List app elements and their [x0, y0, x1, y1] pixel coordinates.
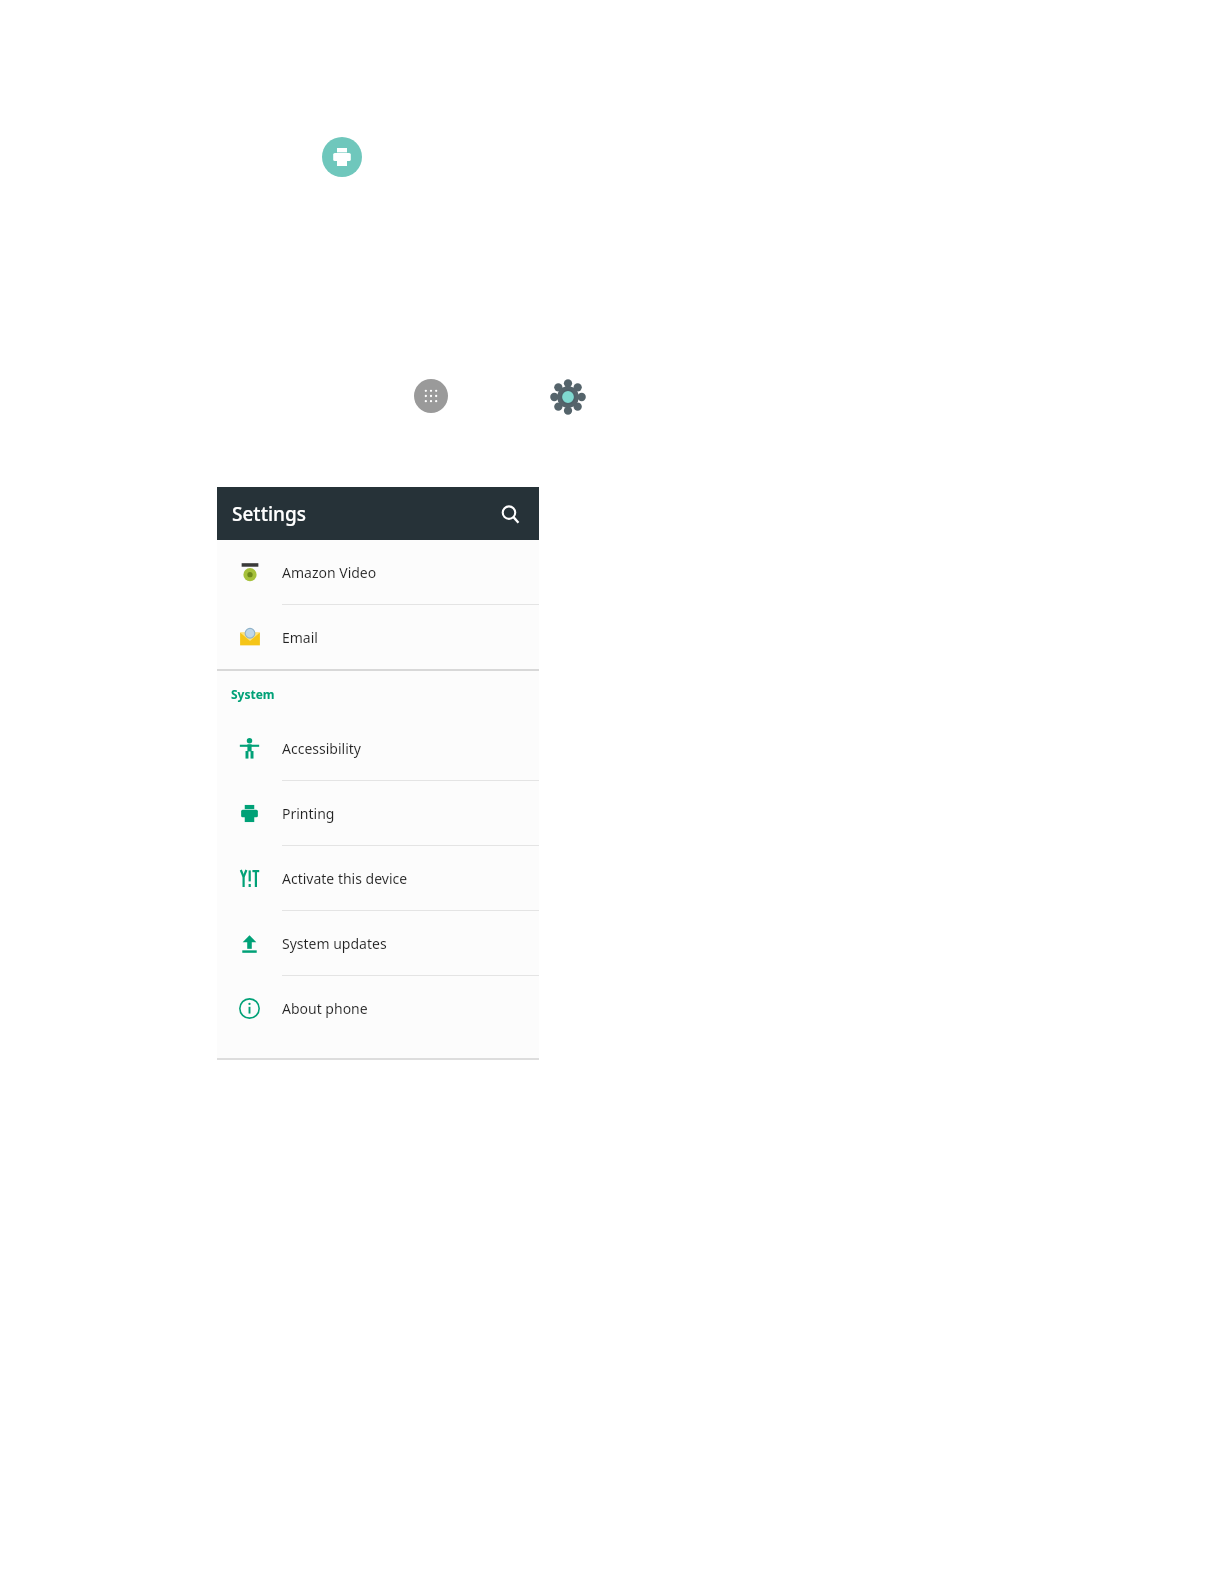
staticText: Settings: [232, 501, 306, 527]
button[interactable]: Amazon Video: [217, 540, 539, 604]
staticText: Printing: [282, 804, 335, 823]
staticText: Activate this device: [282, 869, 408, 888]
button[interactable]: Printing: [217, 781, 539, 845]
button[interactable]: About phone: [217, 976, 539, 1040]
button[interactable]: Activate this device: [217, 846, 539, 910]
button[interactable]: System updates: [217, 911, 539, 975]
button[interactable]: Email: [217, 605, 539, 669]
staticText: System updates: [282, 934, 387, 953]
button[interactable]: Apps: [414, 379, 448, 413]
button[interactable]: Search: [495, 499, 525, 529]
staticText: About phone: [282, 999, 368, 1018]
staticText: Email: [282, 628, 318, 647]
button[interactable]: Settings: [549, 378, 586, 415]
staticText: System: [231, 686, 275, 702]
button[interactable]: Printing: [322, 137, 362, 177]
button[interactable]: Accessibility: [217, 716, 539, 780]
staticText: Amazon Video: [282, 563, 377, 582]
staticText: Accessibility: [282, 739, 361, 758]
